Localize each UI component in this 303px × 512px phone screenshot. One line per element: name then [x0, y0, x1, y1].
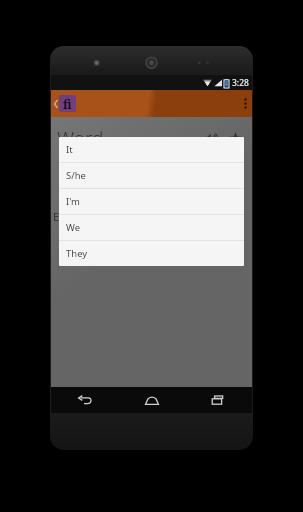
- staticText: They: [66, 247, 88, 260]
- button[interactable]: Back: [51, 387, 118, 413]
- button[interactable]: S/he: [59, 163, 244, 188]
- staticText: I'm: [66, 195, 80, 208]
- button[interactable]: More options: [239, 94, 252, 113]
- button[interactable]: Favorite: [225, 128, 246, 149]
- staticText: 3:28: [232, 77, 249, 89]
- staticText: Word: [57, 125, 104, 151]
- staticText: It: [66, 143, 73, 156]
- button[interactable]: Play pronunciation: [201, 129, 222, 148]
- button[interactable]: Recent apps: [185, 387, 252, 413]
- button[interactable]: Navigate up: [52, 93, 78, 114]
- button[interactable]: They: [59, 241, 244, 266]
- staticText: S/he: [66, 169, 86, 182]
- staticText: We: [66, 221, 81, 234]
- button[interactable]: It: [59, 137, 244, 162]
- button[interactable]: We: [59, 215, 244, 240]
- button[interactable]: Home: [118, 387, 185, 413]
- staticText: fi: [63, 96, 72, 112]
- staticText: English: [53, 209, 91, 224]
- button[interactable]: I'm: [59, 189, 244, 214]
